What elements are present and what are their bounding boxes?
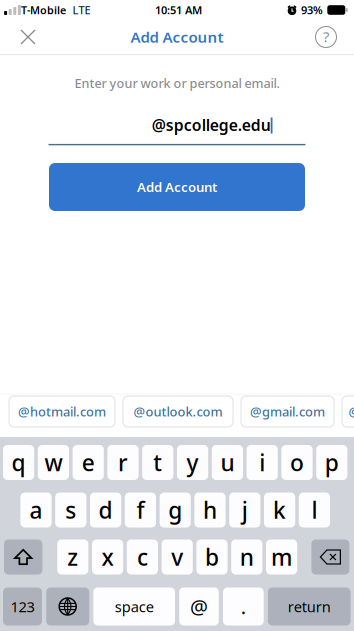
staticText: return — [288, 597, 331, 616]
button[interactable]: j — [229, 492, 260, 527]
button[interactable]: h — [194, 492, 226, 527]
staticText: r — [118, 447, 128, 477]
button[interactable]: f — [125, 492, 156, 527]
staticText: l — [311, 495, 317, 525]
staticText: Add Account — [130, 27, 223, 47]
button[interactable]: @hotmail.com — [9, 396, 115, 427]
button[interactable]: c — [127, 539, 158, 574]
button[interactable]: n — [231, 539, 262, 574]
staticText: ? — [323, 27, 329, 46]
button[interactable]: Shift — [4, 539, 42, 574]
staticText: t — [153, 447, 162, 477]
staticText: c — [137, 542, 148, 572]
staticText: b — [205, 542, 219, 572]
button[interactable]: u — [212, 445, 243, 480]
staticText: m — [271, 542, 292, 572]
staticText: @outlook.com — [133, 403, 222, 420]
button[interactable]: Close — [6, 18, 50, 55]
button[interactable]: @gmail.com — [241, 396, 334, 427]
staticText: q — [12, 447, 26, 477]
staticText: @yahoo.com — [348, 403, 354, 420]
button[interactable]: b — [196, 539, 228, 574]
button[interactable]: z — [57, 539, 88, 574]
staticText: v — [171, 542, 183, 572]
button[interactable]: l — [299, 492, 330, 527]
button[interactable]: o — [281, 445, 313, 480]
button[interactable]: y — [177, 445, 208, 480]
button[interactable]: p — [316, 445, 347, 480]
staticText: z — [67, 542, 78, 572]
button[interactable]: e — [73, 445, 104, 480]
button[interactable]: r — [107, 445, 139, 480]
button[interactable]: q — [3, 445, 34, 480]
button[interactable]: t — [142, 445, 173, 480]
staticText: @ — [190, 593, 208, 620]
staticText: . — [241, 593, 246, 620]
button[interactable]: return — [268, 587, 351, 625]
staticText: Add Account — [137, 178, 217, 196]
button[interactable]: i — [247, 445, 278, 480]
button[interactable]: Backspace — [311, 539, 349, 574]
staticText: g — [168, 495, 182, 525]
button[interactable]: v — [162, 539, 193, 574]
button[interactable]: space — [93, 587, 175, 625]
staticText: f — [136, 495, 144, 525]
staticText: p — [325, 447, 339, 477]
staticText: @spcollege.edu — [152, 114, 271, 136]
staticText: @hotmail.com — [18, 403, 106, 420]
button[interactable]: Next keyboard — [46, 587, 89, 625]
staticText: j — [242, 495, 248, 525]
staticText: T-Mobile — [21, 3, 66, 17]
button[interactable]: g — [160, 492, 191, 527]
staticText: y — [187, 447, 199, 477]
staticText: n — [240, 542, 254, 572]
button[interactable]: k — [264, 492, 295, 527]
staticText: 10:51 AM — [155, 2, 202, 18]
staticText: h — [203, 495, 217, 525]
button[interactable]: a — [20, 492, 52, 527]
staticText: o — [290, 447, 304, 477]
staticText: s — [65, 495, 76, 525]
button[interactable]: Help — [304, 18, 348, 55]
staticText: d — [99, 495, 113, 525]
staticText: a — [29, 495, 42, 525]
staticText: LTE — [72, 2, 90, 18]
staticText: i — [259, 447, 265, 477]
button[interactable]: @ — [179, 587, 219, 625]
button[interactable]: Add Account — [49, 163, 305, 211]
staticText: w — [44, 447, 62, 477]
button[interactable]: @outlook.com — [123, 396, 233, 427]
staticText: k — [273, 495, 286, 525]
staticText: e — [82, 447, 95, 477]
button[interactable]: d — [90, 492, 121, 527]
staticText: x — [102, 542, 114, 572]
button[interactable]: s — [55, 492, 86, 527]
button[interactable]: m — [266, 539, 297, 574]
staticText: 123 — [10, 597, 34, 616]
staticText: u — [220, 447, 234, 477]
staticText: Enter your work or personal email. — [74, 74, 279, 92]
button[interactable]: w — [38, 445, 69, 480]
button[interactable]: @yahoo.com — [342, 396, 354, 427]
button[interactable]: x — [92, 539, 123, 574]
staticText: @gmail.com — [250, 403, 325, 420]
button[interactable]: 123 — [3, 587, 42, 625]
button[interactable]: . — [223, 587, 264, 625]
staticText: 93% — [301, 2, 323, 18]
staticText: space — [115, 597, 154, 616]
